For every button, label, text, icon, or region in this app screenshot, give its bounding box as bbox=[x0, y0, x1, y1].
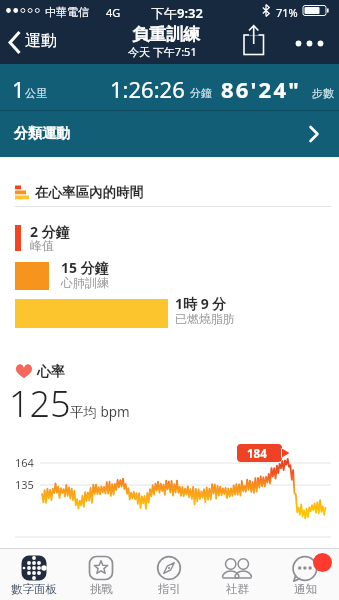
staticText: 平均 bpm bbox=[70, 403, 130, 421]
button[interactable] bbox=[288, 25, 332, 61]
staticText: 已燃燒脂肪 bbox=[175, 311, 235, 326]
button[interactable]: 數字面板 bbox=[0, 548, 67, 600]
staticText: 負重訓練 bbox=[132, 24, 200, 45]
staticText: 數字面板 bbox=[11, 582, 57, 596]
staticText: 分類運動 bbox=[14, 125, 70, 143]
staticText: 峰值 bbox=[30, 238, 54, 253]
staticText: 184 bbox=[247, 446, 267, 462]
staticText: 135 bbox=[15, 477, 34, 492]
staticText: 4G bbox=[106, 5, 121, 20]
staticText: 通知 bbox=[294, 582, 317, 596]
staticText: 運動 bbox=[25, 31, 57, 51]
button[interactable]: 挑戰 bbox=[67, 548, 135, 600]
staticText: 心率 bbox=[37, 363, 65, 381]
staticText: 71% bbox=[276, 5, 298, 20]
staticText: 社群 bbox=[226, 582, 249, 596]
staticText: 指引 bbox=[158, 582, 181, 596]
staticText: 1 bbox=[12, 74, 25, 104]
staticText: 86'24" bbox=[221, 74, 301, 104]
button[interactable]: 通知 bbox=[271, 548, 339, 600]
staticText: 下午9:32 bbox=[151, 4, 203, 22]
staticText: 公里 bbox=[25, 86, 47, 100]
staticText: 1:26:26 bbox=[110, 74, 185, 104]
button[interactable]: 社群 bbox=[203, 548, 271, 600]
staticText: 中華電信 bbox=[45, 5, 89, 19]
staticText: 分鐘 bbox=[190, 86, 212, 100]
staticText: 步數 bbox=[312, 86, 334, 100]
staticText: 今天 下午7:51 bbox=[128, 44, 197, 59]
staticText: 挑戰 bbox=[90, 582, 113, 596]
button[interactable]: 指引 bbox=[135, 548, 203, 600]
button[interactable] bbox=[0, 22, 70, 62]
staticText: 164 bbox=[15, 455, 34, 470]
staticText: 15 分鐘 bbox=[61, 258, 109, 277]
button[interactable] bbox=[238, 22, 272, 62]
staticText: 2 分鐘 bbox=[30, 222, 70, 241]
button[interactable] bbox=[0, 110, 339, 157]
staticText: 1時 9 分 bbox=[175, 294, 227, 313]
staticText: 125 bbox=[9, 379, 71, 428]
staticText: 在心率區內的時間 bbox=[35, 184, 143, 201]
staticText: 心肺訓練 bbox=[61, 275, 109, 290]
